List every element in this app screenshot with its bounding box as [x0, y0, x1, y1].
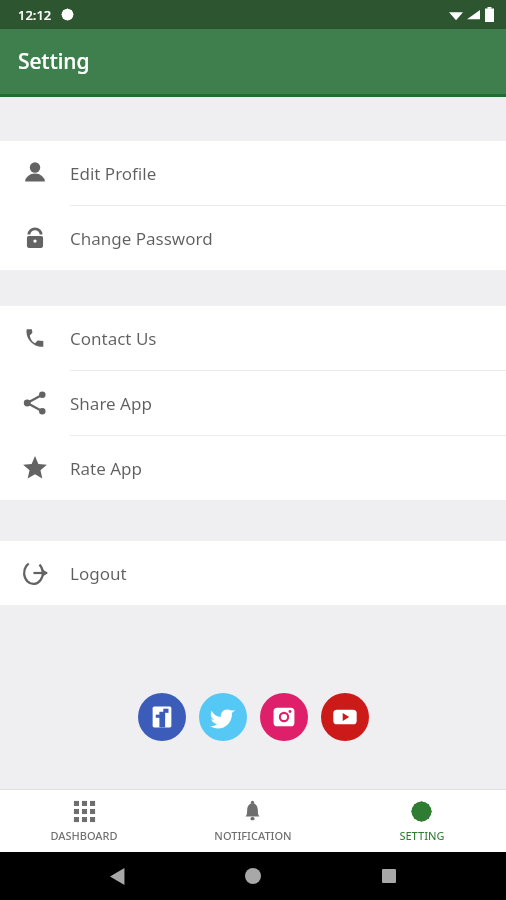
staticText: Share App: [70, 392, 152, 415]
button[interactable]: Twitter: [199, 693, 247, 741]
button[interactable]: SETTING: [337, 790, 506, 852]
button[interactable]: Back: [100, 858, 136, 894]
staticText: SETTING: [399, 828, 445, 843]
button[interactable]: Instagram: [260, 693, 308, 741]
button[interactable]: Facebook: [138, 693, 186, 741]
button[interactable]: Share App: [0, 371, 506, 435]
button[interactable]: DASHBOARD: [0, 790, 168, 852]
staticText: Change Password: [70, 227, 213, 250]
button[interactable]: Contact Us: [0, 306, 506, 370]
staticText: DASHBOARD: [50, 828, 118, 843]
button[interactable]: Recents: [371, 858, 407, 894]
staticText: Setting: [18, 47, 90, 76]
button[interactable]: YouTube: [321, 693, 369, 741]
button[interactable]: NOTIFICATION: [168, 790, 337, 852]
staticText: Edit Profile: [70, 162, 157, 185]
button[interactable]: Rate App: [0, 436, 506, 500]
button[interactable]: Home: [235, 858, 271, 894]
staticText: Rate App: [70, 457, 143, 480]
button[interactable]: Change Password: [0, 206, 506, 270]
staticText: Logout: [70, 562, 127, 585]
staticText: NOTIFICATION: [214, 828, 292, 843]
staticText: 12:12: [18, 6, 52, 24]
button[interactable]: Edit Profile: [0, 141, 506, 205]
button[interactable]: Logout: [0, 541, 506, 605]
staticText: Contact Us: [70, 327, 157, 350]
